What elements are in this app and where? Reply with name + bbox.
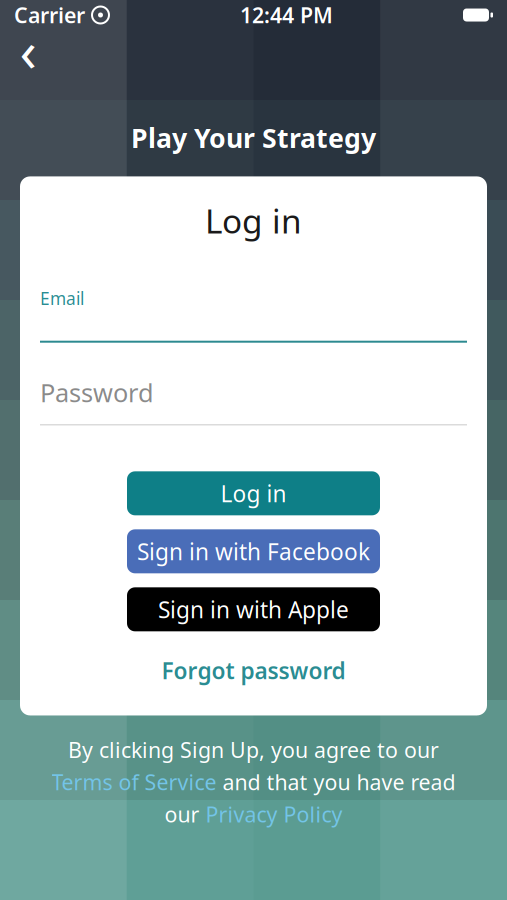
staticText: and that you have read: [216, 768, 455, 796]
button[interactable]: Terms of Service: [51, 768, 216, 796]
staticText: Play Your Strategy: [131, 120, 376, 155]
staticText: ‹: [19, 13, 36, 87]
staticText: Password: [40, 376, 154, 409]
staticText: Carrier: [14, 1, 85, 29]
staticText: Terms of Service: [51, 768, 216, 796]
button[interactable]: Back: [6, 28, 50, 72]
button[interactable]: Forgot password: [143, 647, 363, 693]
staticText: Forgot password: [161, 655, 345, 685]
button[interactable]: Sign in with Apple: [127, 587, 380, 631]
staticText: Log in: [220, 478, 286, 508]
staticText: Privacy Policy: [205, 800, 342, 828]
staticText: By clicking Sign Up, you agree to our: [68, 735, 439, 764]
staticText: Sign in with Apple: [158, 594, 349, 624]
button[interactable]: Log in: [127, 471, 380, 515]
staticText: Log in: [205, 198, 302, 243]
staticText: Sign in with Facebook: [137, 536, 370, 566]
button[interactable]: Sign in with Facebook: [127, 529, 380, 573]
staticText: 12:44 PM: [240, 1, 333, 29]
staticText: our: [164, 800, 205, 828]
button[interactable]: Privacy Policy: [205, 800, 342, 828]
staticText: Email: [40, 287, 84, 310]
